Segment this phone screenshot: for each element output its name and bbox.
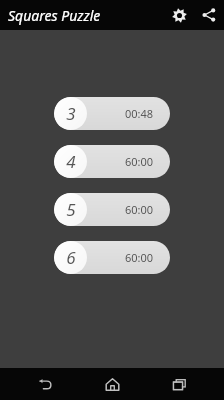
staticText: 3 <box>66 102 76 125</box>
button[interactable]: Settings <box>164 0 194 30</box>
staticText: 4 <box>66 150 76 173</box>
button[interactable]: Recent apps <box>157 368 201 400</box>
button[interactable]: Share <box>194 0 224 30</box>
button[interactable]: 60:00 <box>54 145 170 178</box>
button[interactable]: 00:48 <box>54 97 170 130</box>
staticText: 60:00 <box>125 202 154 217</box>
staticText: 6 <box>66 246 76 269</box>
staticText: 60:00 <box>125 154 154 169</box>
button[interactable]: 60:00 <box>54 193 170 226</box>
button[interactable]: 60:00 <box>54 241 170 274</box>
staticText: Squares Puzzle <box>8 6 101 25</box>
button[interactable]: Back <box>23 368 67 400</box>
button[interactable]: Home <box>90 368 134 400</box>
staticText: 60:00 <box>125 250 154 265</box>
staticText: 00:48 <box>125 106 154 121</box>
staticText: 5 <box>66 198 76 221</box>
